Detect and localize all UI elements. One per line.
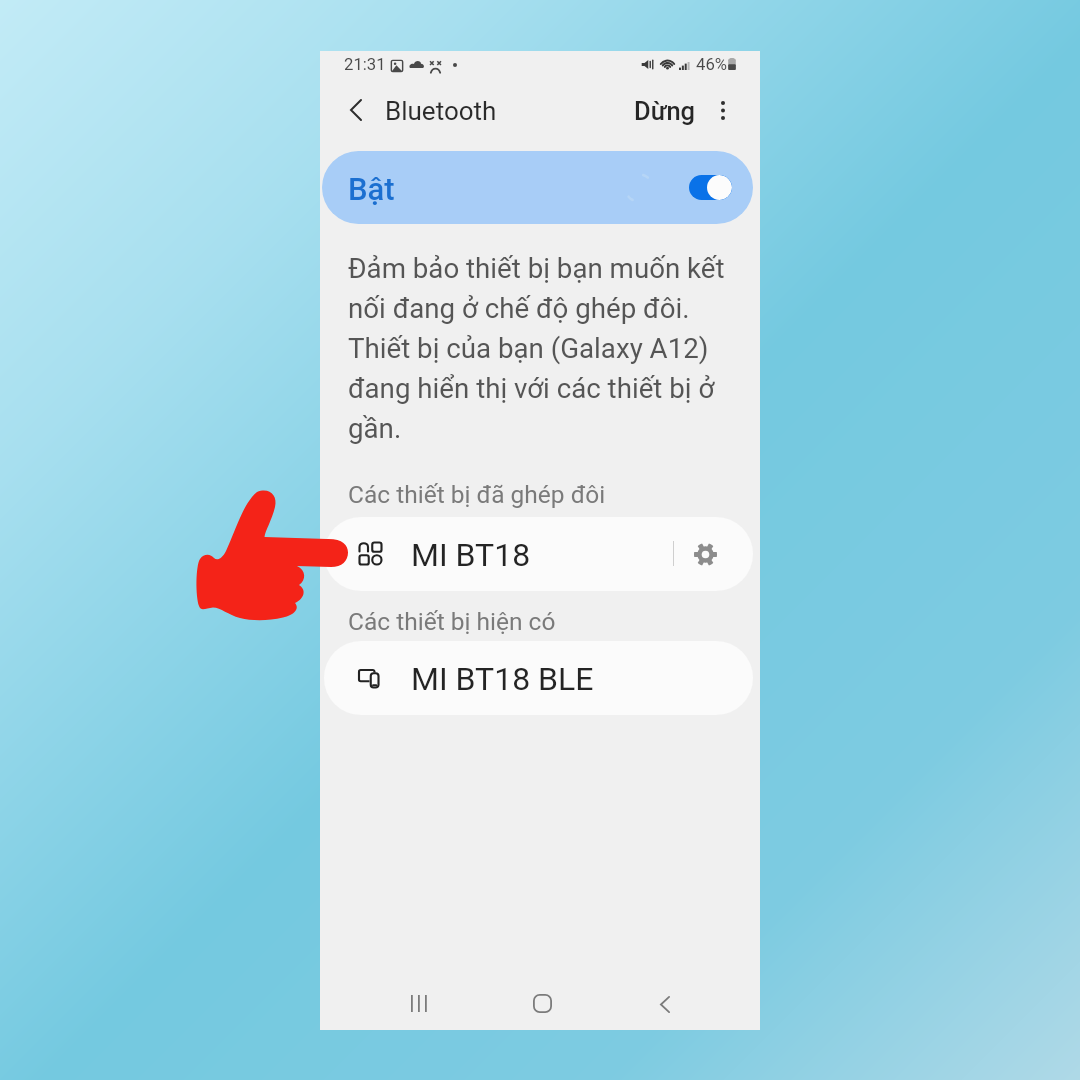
staticText: MI BT18 BLE (411, 660, 594, 698)
button[interactable]: Back (644, 983, 686, 1025)
staticText: Bluetooth (385, 96, 497, 126)
staticText: Dừng (634, 96, 696, 126)
staticText: Đảm bảo thiết bị bạn muốn kết (348, 252, 725, 284)
button[interactable]: Bật (322, 151, 753, 224)
button[interactable]: MI BT18 (324, 517, 753, 591)
button[interactable]: Back (335, 89, 377, 131)
staticText: Bật (348, 171, 395, 207)
button[interactable]: Recents (398, 982, 440, 1024)
staticText: MI BT18 (411, 536, 531, 574)
button[interactable]: Device settings (677, 517, 734, 591)
staticText: Các thiết bị hiện có (348, 607, 556, 636)
button[interactable]: MI BT18 BLE (324, 641, 753, 715)
button[interactable]: Home (521, 982, 563, 1024)
button[interactable]: Dừng (624, 91, 706, 131)
staticText: Các thiết bị đã ghép đôi (348, 480, 606, 509)
staticText: Thiết bị của bạn (Galaxy A12) (348, 332, 709, 364)
staticText: gần. (348, 412, 402, 444)
staticText: đang hiển thị với các thiết bị ở (348, 372, 715, 404)
staticText: nối đang ở chế độ ghép đôi. (348, 292, 690, 324)
staticText: 21:31 (344, 55, 386, 75)
staticText: 46% (696, 55, 727, 75)
button[interactable]: Bluetooth on (689, 175, 732, 200)
button[interactable]: More options (704, 91, 742, 129)
